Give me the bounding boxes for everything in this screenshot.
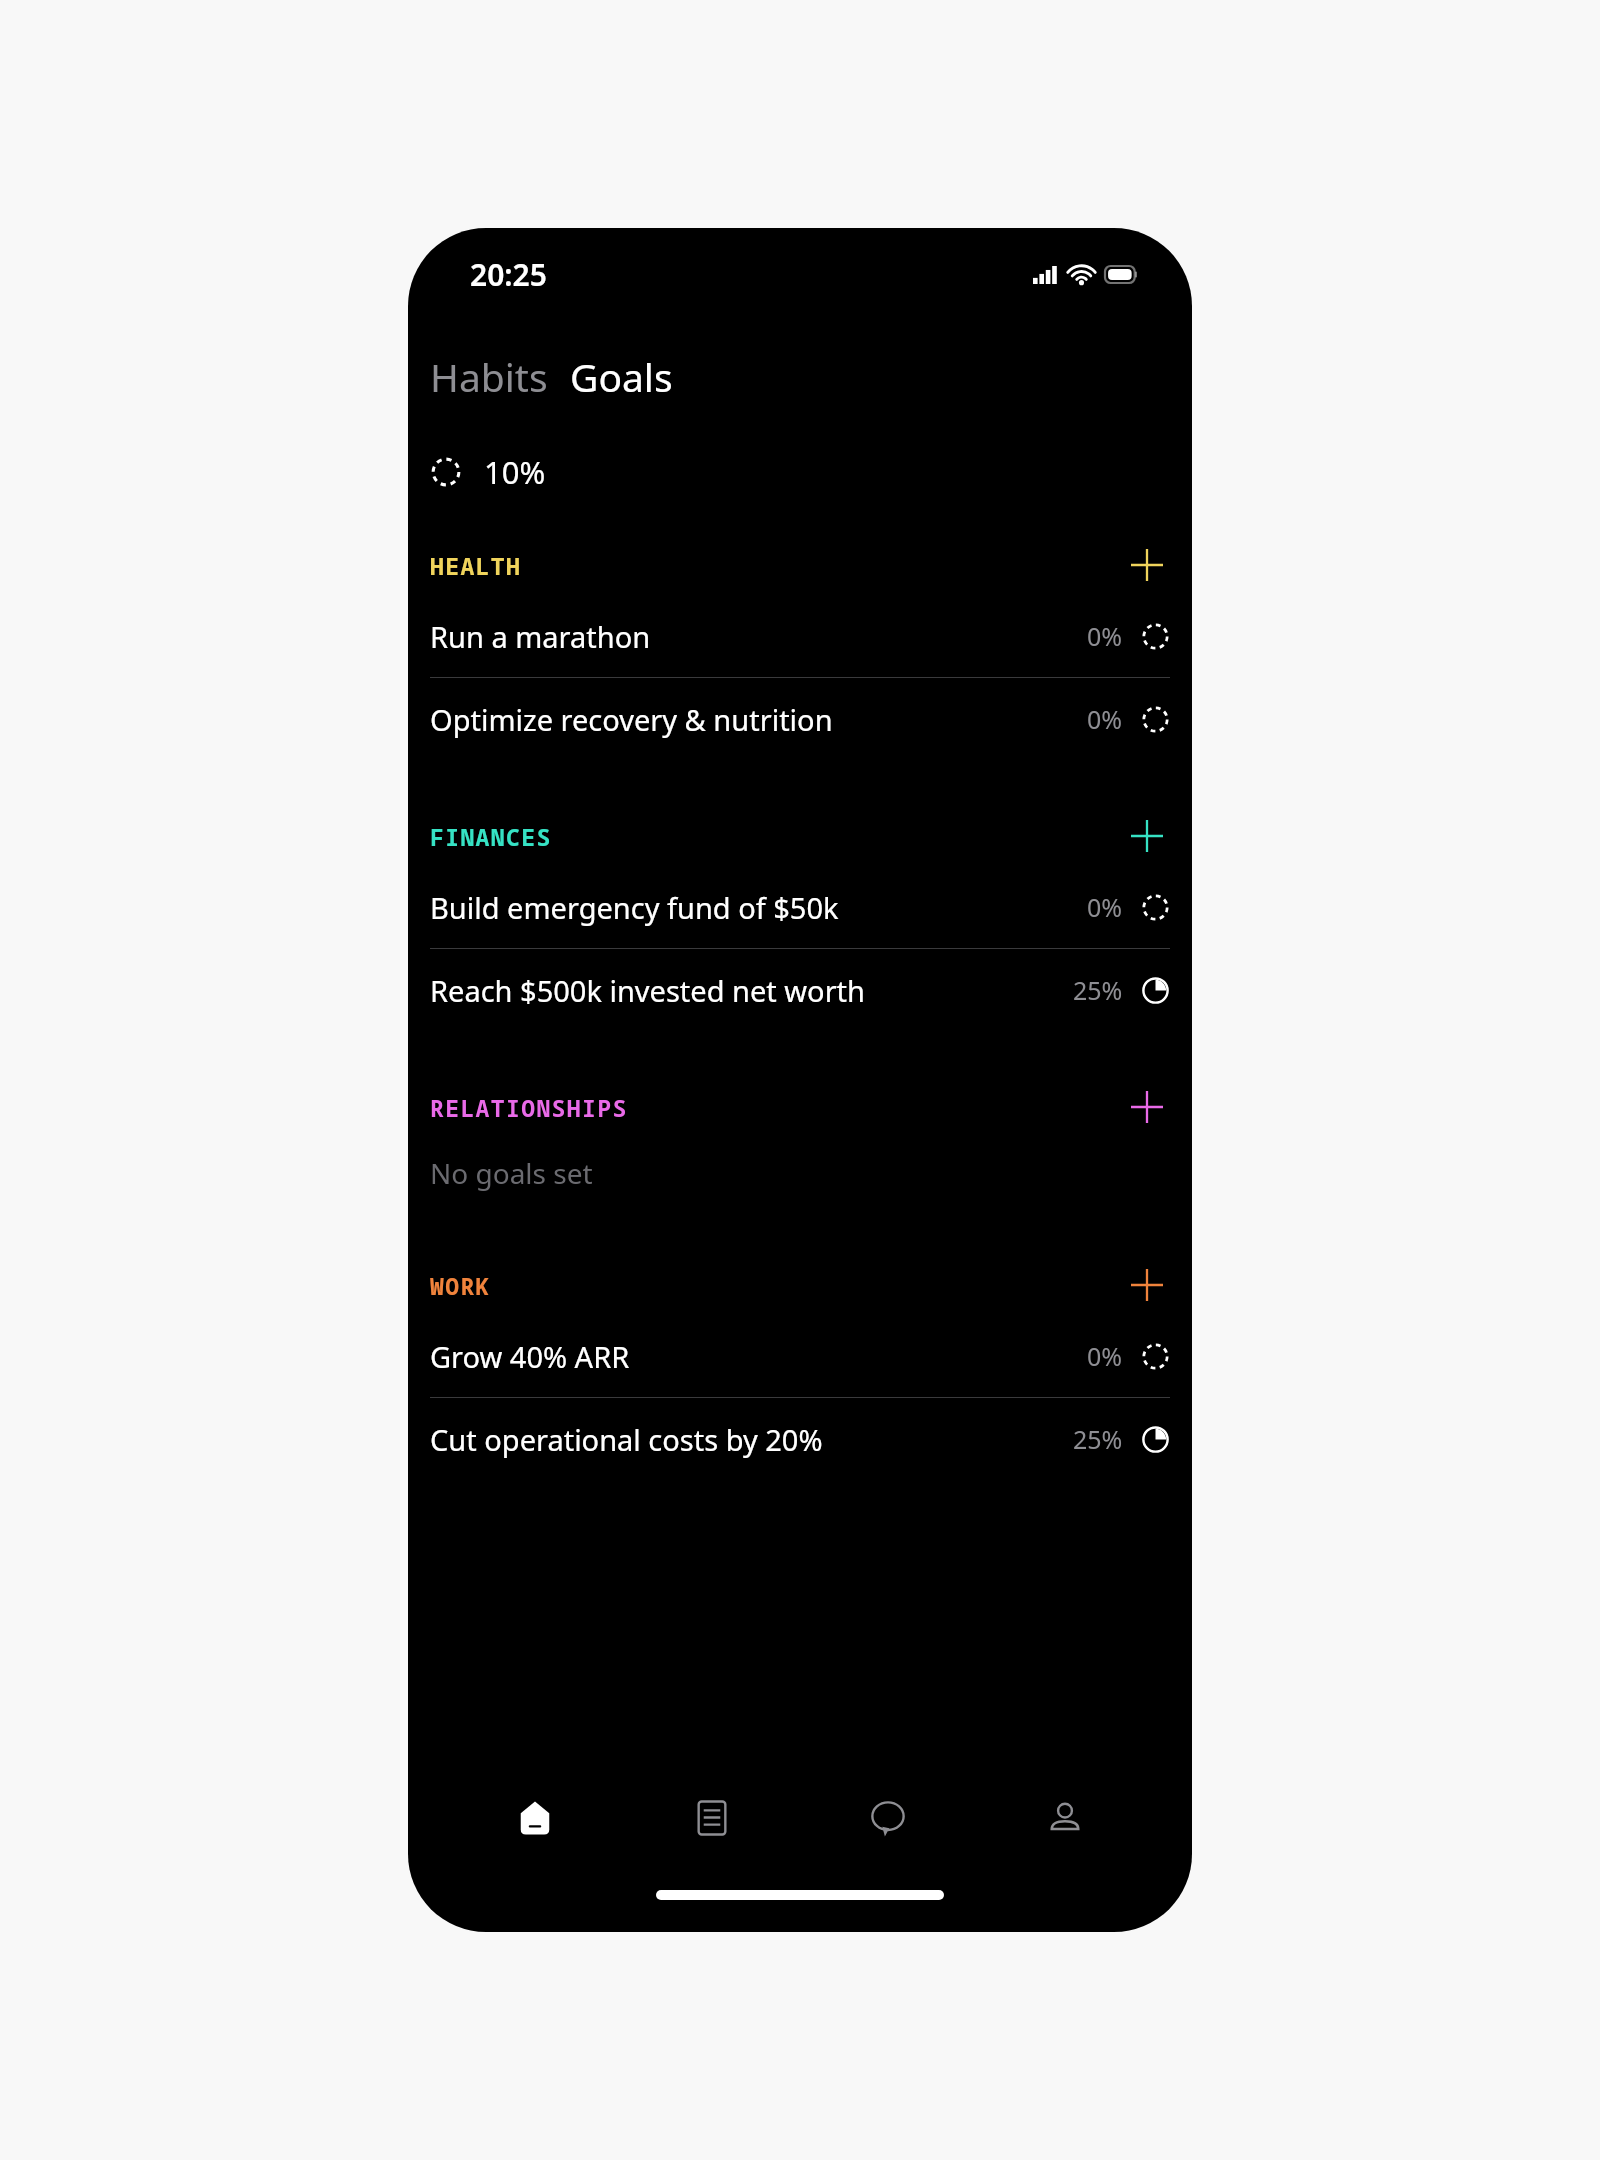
staticText: 0% xyxy=(1087,619,1123,653)
button[interactable]: Reach $500k invested net worth xyxy=(408,949,1192,1031)
button[interactable]: Goals xyxy=(568,342,675,411)
button[interactable]: Add goal to RELATIONSHIPS xyxy=(1124,1084,1170,1130)
button[interactable]: Add goal to WORK xyxy=(1124,1262,1170,1308)
staticText: 25% xyxy=(1073,1422,1123,1456)
staticText: Grow 40% ARR xyxy=(430,1337,1087,1376)
button[interactable]: Grow 40% ARR xyxy=(408,1315,1192,1397)
button[interactable]: Optimize recovery & nutrition xyxy=(408,678,1192,760)
staticText: 25% xyxy=(1073,973,1123,1007)
button[interactable]: Habits xyxy=(428,342,550,411)
button[interactable]: Run a marathon xyxy=(408,595,1192,677)
staticText: 20:25 xyxy=(470,254,547,295)
staticText: FINANCES xyxy=(430,821,1124,852)
staticText: Optimize recovery & nutrition xyxy=(430,700,1087,739)
button[interactable]: Add goal to FINANCES xyxy=(1124,813,1170,859)
staticText: Build emergency fund of $50k xyxy=(430,888,1087,927)
staticText: RELATIONSHIPS xyxy=(430,1092,1124,1123)
button[interactable]: Cut operational costs by 20% xyxy=(408,1398,1192,1480)
button[interactable]: 10% xyxy=(408,451,1192,493)
staticText: 10% xyxy=(484,451,546,493)
button[interactable]: Home xyxy=(485,1768,585,1868)
staticText: 0% xyxy=(1087,890,1123,924)
button[interactable]: Add goal to HEALTH xyxy=(1124,542,1170,588)
staticText: Habits xyxy=(430,350,548,403)
button[interactable]: Journal xyxy=(662,1768,762,1868)
staticText: Run a marathon xyxy=(430,617,1087,656)
staticText: No goals set xyxy=(430,1154,593,1192)
button[interactable]: Chat xyxy=(838,1768,938,1868)
button[interactable]: Profile xyxy=(1015,1768,1115,1868)
staticText: 0% xyxy=(1087,1339,1123,1373)
staticText: WORK xyxy=(430,1270,1124,1301)
staticText: HEALTH xyxy=(430,550,1124,581)
staticText: 0% xyxy=(1087,702,1123,736)
staticText: Goals xyxy=(570,350,673,403)
staticText: Cut operational costs by 20% xyxy=(430,1420,1073,1459)
staticText: Reach $500k invested net worth xyxy=(430,971,1073,1010)
button[interactable]: Build emergency fund of $50k xyxy=(408,866,1192,948)
